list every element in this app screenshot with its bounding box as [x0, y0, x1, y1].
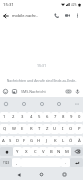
staticText: D [16, 138, 20, 144]
button[interactable]: Video call [62, 10, 73, 21]
button[interactable]: G [28, 136, 35, 145]
button[interactable]: B [47, 147, 55, 156]
button[interactable]: Call [51, 10, 62, 21]
button[interactable]: P [75, 124, 83, 134]
button[interactable]: L [59, 136, 67, 145]
button[interactable]: F [21, 136, 28, 145]
staticText: . [65, 160, 67, 166]
staticText: mobile.nachr… [12, 13, 39, 18]
button[interactable]: A [0, 136, 7, 145]
staticText: B [50, 149, 53, 155]
staticText: K [54, 138, 57, 144]
button[interactable]: Y [13, 147, 22, 156]
staticText: 6 [46, 114, 49, 120]
button[interactable]: Home [37, 170, 46, 179]
button[interactable]: SMS-Nachricht [19, 85, 64, 97]
staticText: M [65, 149, 69, 155]
button[interactable]: N [55, 147, 63, 156]
staticText: 2 [12, 114, 15, 120]
staticText: , [16, 160, 18, 166]
staticText: X [25, 149, 28, 155]
button[interactable]: Z [43, 124, 51, 134]
staticText: 7 [54, 114, 57, 120]
button[interactable]: . [61, 158, 70, 167]
staticText: R [30, 126, 33, 132]
button[interactable]: S [7, 136, 14, 145]
button[interactable]: Q [0, 124, 9, 134]
staticText: O [69, 126, 73, 132]
button[interactable]: More options [73, 11, 82, 20]
staticText: P [78, 126, 81, 132]
staticText: 5 [38, 114, 41, 120]
staticText: E [21, 126, 24, 132]
button[interactable]: 5 [35, 112, 43, 122]
button[interactable]: W [9, 124, 18, 134]
button[interactable]: Settings [55, 100, 63, 108]
button[interactable]: 6 [43, 112, 51, 122]
staticText: V [42, 149, 45, 155]
button[interactable]: C [31, 147, 39, 156]
staticText: Ä [78, 138, 81, 144]
button[interactable]: O [67, 124, 75, 134]
staticText: 9 [70, 114, 73, 120]
button[interactable]: Emoji [1, 87, 10, 96]
staticText: 8 [62, 114, 65, 120]
staticText: 0 [78, 114, 81, 120]
button[interactable]: Camera [64, 87, 73, 96]
button[interactable]: ?123 [0, 158, 12, 167]
button[interactable]: E [18, 124, 27, 134]
staticText: 15:31 [37, 63, 47, 68]
button[interactable]: R [27, 124, 35, 134]
staticText: 3 [21, 114, 24, 120]
button[interactable]: H [35, 136, 43, 145]
staticText: U [53, 126, 57, 132]
button[interactable]: 8 [59, 112, 67, 122]
button[interactable]: 3 [18, 112, 27, 122]
button[interactable]: Backspace [71, 147, 83, 156]
staticText: 1 [3, 114, 6, 120]
button[interactable]: Voice message [73, 87, 82, 96]
staticText: Nachrichten und Anrufe sind Ende-zu-Ende… [0, 78, 83, 83]
button[interactable]: T [35, 124, 43, 134]
staticText: Q [3, 126, 7, 132]
button[interactable]: D [14, 136, 21, 145]
button[interactable]: GIF [38, 100, 46, 108]
staticText: J [46, 138, 48, 144]
button[interactable]: Enter [70, 158, 83, 167]
staticText: S [9, 138, 12, 144]
button[interactable]: J [43, 136, 51, 145]
button[interactable]: Back [0, 10, 11, 21]
staticText: T [38, 126, 41, 132]
button[interactable]: Recent apps [60, 170, 69, 179]
button[interactable]: , [12, 158, 21, 167]
button[interactable]: Google search [2, 100, 10, 108]
button[interactable]: Ä [75, 136, 83, 145]
button[interactable]: V [39, 147, 47, 156]
button[interactable]: More [73, 100, 81, 108]
button[interactable]: Stickers [20, 100, 28, 108]
button[interactable]: U [51, 124, 59, 134]
staticText: Ö [69, 138, 73, 144]
staticText: C [34, 149, 37, 155]
staticText: Z [46, 126, 49, 132]
button[interactable]: 0 [75, 112, 83, 122]
button[interactable]: 1 [0, 112, 9, 122]
button[interactable]: X [22, 147, 31, 156]
button[interactable]: Back [14, 170, 23, 179]
button[interactable]: M [63, 147, 71, 156]
button[interactable]: 9 [67, 112, 75, 122]
button[interactable]: I [59, 124, 67, 134]
button[interactable]: Ö [67, 136, 75, 145]
staticText: 15:31 [3, 2, 14, 8]
staticText: W [12, 126, 16, 132]
staticText: Y [16, 149, 19, 155]
button[interactable]: 2 [9, 112, 18, 122]
button[interactable]: 7 [51, 112, 59, 122]
button[interactable]: Shift [0, 147, 13, 156]
button[interactable]: K [51, 136, 59, 145]
button[interactable]: Attach image [10, 87, 19, 96]
staticText: N [57, 149, 61, 155]
button[interactable]: 4 [27, 112, 35, 122]
staticText: 4 [30, 114, 33, 120]
